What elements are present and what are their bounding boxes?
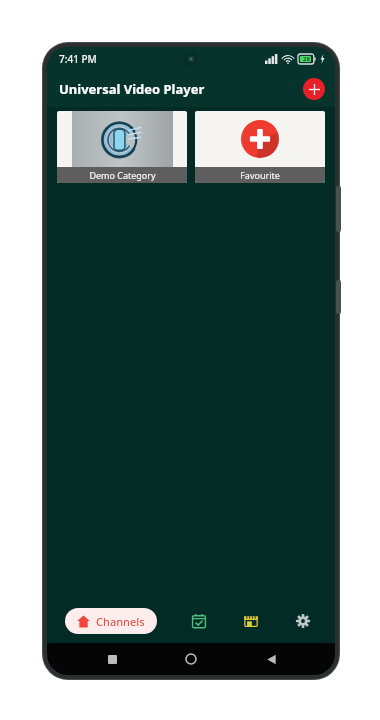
button[interactable]: Back <box>256 644 286 674</box>
button[interactable]: Add <box>303 78 325 100</box>
staticText: Channels <box>96 614 145 629</box>
staticText: Universal Video Player <box>59 80 205 98</box>
button[interactable]: Settings <box>283 601 323 641</box>
staticText: 7:41 PM <box>59 52 97 66</box>
button[interactable]: Demo Category <box>57 111 187 183</box>
button[interactable]: Home <box>176 644 206 674</box>
button[interactable]: Channels <box>65 608 157 634</box>
button[interactable]: Store <box>231 601 271 641</box>
button[interactable]: Favourite <box>195 111 325 183</box>
staticText: 28 <box>303 55 310 63</box>
staticText: Favourite <box>240 169 280 181</box>
button[interactable]: Recents <box>97 644 127 674</box>
staticText: Demo Category <box>89 169 156 181</box>
button[interactable]: Schedule <box>179 601 219 641</box>
